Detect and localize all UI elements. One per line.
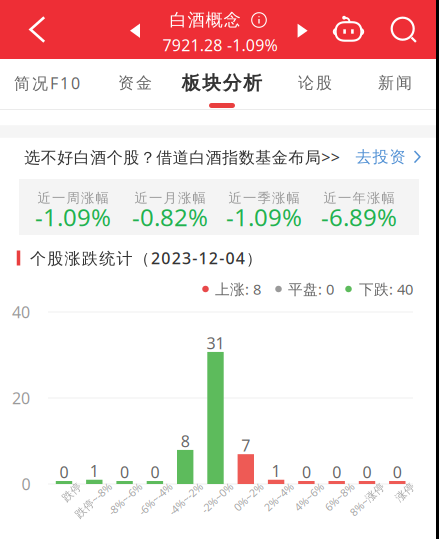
staticText: 涨停 <box>399 498 421 511</box>
button[interactable]: 去投资 <box>350 137 426 177</box>
button[interactable]: Previous stock <box>120 13 150 49</box>
staticText: -0.82% <box>132 201 208 233</box>
staticText: 近一年涨幅 <box>323 190 394 206</box>
staticText: 近一季涨幅 <box>228 190 299 206</box>
staticText: 2%~4% <box>264 498 300 512</box>
staticText: -1.09% <box>226 201 302 233</box>
button[interactable]: Next stock <box>288 13 318 49</box>
staticText: 40 <box>12 301 30 323</box>
staticText: 白酒概念 <box>169 9 240 31</box>
staticText: 上涨: 8 <box>215 279 261 299</box>
staticText: -8%~-6% <box>107 498 149 512</box>
staticText: 近一周涨幅 <box>37 190 108 206</box>
button[interactable]: 简况F10 <box>3 59 91 107</box>
button[interactable]: 选不好白酒个股？借道白酒指数基金布局>> <box>17 135 347 179</box>
staticText: -6.89% <box>321 201 397 233</box>
staticText: 4%~6% <box>294 498 330 512</box>
staticText: 8 <box>181 430 190 451</box>
staticText: 6%~8% <box>325 498 361 512</box>
staticText: 简况F10 <box>14 72 80 94</box>
staticText: 1 <box>272 460 281 481</box>
staticText: 0%~2% <box>234 498 270 512</box>
button[interactable]: Back <box>9 1 65 57</box>
button[interactable]: 新闻 <box>351 59 439 107</box>
staticText: 0 <box>302 461 311 483</box>
button[interactable]: 资金 <box>91 59 179 107</box>
staticText: 8%~涨停 <box>348 498 391 512</box>
staticText: 新闻 <box>378 73 412 93</box>
staticText: 20 <box>12 387 30 409</box>
staticText: -1.09% <box>35 201 111 233</box>
staticText: 0 <box>332 461 341 483</box>
staticText: 0 <box>150 461 159 483</box>
staticText: 近一月涨幅 <box>134 190 205 206</box>
staticText: 7 <box>241 435 250 456</box>
staticText: 下跌: 40 <box>359 279 413 299</box>
staticText: -6%~-4% <box>137 498 179 512</box>
button[interactable]: 论股 <box>271 59 359 107</box>
staticText: 去投资 <box>355 147 405 167</box>
staticText: -2%~0% <box>200 498 239 512</box>
staticText: -4%~-2% <box>167 498 209 512</box>
staticText: 论股 <box>298 73 332 93</box>
staticText: 个股涨跌统计（2023-12-04） <box>30 247 262 269</box>
staticText: 选不好白酒个股？借道白酒指数基金布局>> <box>24 146 340 168</box>
staticText: 0 <box>120 461 129 483</box>
staticText: 0 <box>21 473 30 495</box>
staticText: 7921.28 -1.09% <box>163 34 277 56</box>
staticText: 平盘: 0 <box>288 279 334 299</box>
staticText: 资金 <box>118 73 152 93</box>
staticText: 0 <box>59 461 68 483</box>
staticText: 板块分析 <box>182 71 262 94</box>
staticText: 1 <box>90 460 99 481</box>
staticText: 0 <box>362 461 371 483</box>
staticText: 0 <box>393 461 402 483</box>
staticText: 跌停 <box>66 498 88 511</box>
button[interactable]: Search <box>379 4 429 56</box>
staticText: 跌停~-8% <box>72 498 118 512</box>
button[interactable]: AI assistant <box>324 2 374 54</box>
staticText: 31 <box>206 332 224 353</box>
button[interactable]: 板块分析 <box>178 59 266 107</box>
